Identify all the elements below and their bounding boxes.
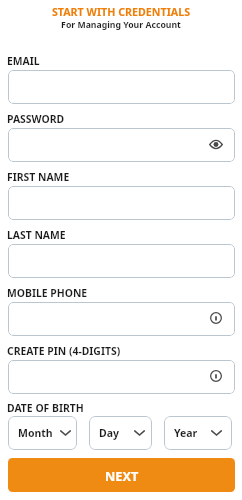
staticText: Month [18, 426, 53, 440]
staticText: EMAIL [7, 54, 40, 68]
button[interactable]: More information [206, 308, 226, 328]
staticText: LAST NAME [7, 228, 66, 242]
button[interactable]: Show password [206, 134, 226, 154]
staticText: PASSWORD [7, 112, 65, 126]
staticText: Day [99, 426, 119, 440]
button[interactable]: NEXT [8, 458, 235, 492]
button[interactable] [8, 70, 235, 104]
staticText: DATE OF BIRTH [7, 401, 84, 415]
button[interactable]: Show password [8, 128, 235, 162]
staticText: START WITH CREDENTIALS [0, 5, 242, 20]
button[interactable]: Day [89, 416, 152, 450]
staticText: FIRST NAME [7, 170, 70, 184]
button[interactable]: More information [8, 302, 235, 336]
button[interactable]: Month [8, 416, 77, 450]
button[interactable]: More information [206, 366, 226, 386]
staticText: CREATE PIN (4-DIGITS) [7, 344, 121, 358]
staticText: NEXT [105, 467, 139, 484]
staticText: MOBILE PHONE [7, 286, 88, 300]
staticText: Year [174, 426, 198, 440]
button[interactable] [8, 186, 235, 220]
button[interactable]: Year [164, 416, 232, 450]
button[interactable]: More information [8, 360, 235, 394]
button[interactable] [8, 244, 235, 278]
staticText: For Managing Your Account [0, 19, 242, 31]
